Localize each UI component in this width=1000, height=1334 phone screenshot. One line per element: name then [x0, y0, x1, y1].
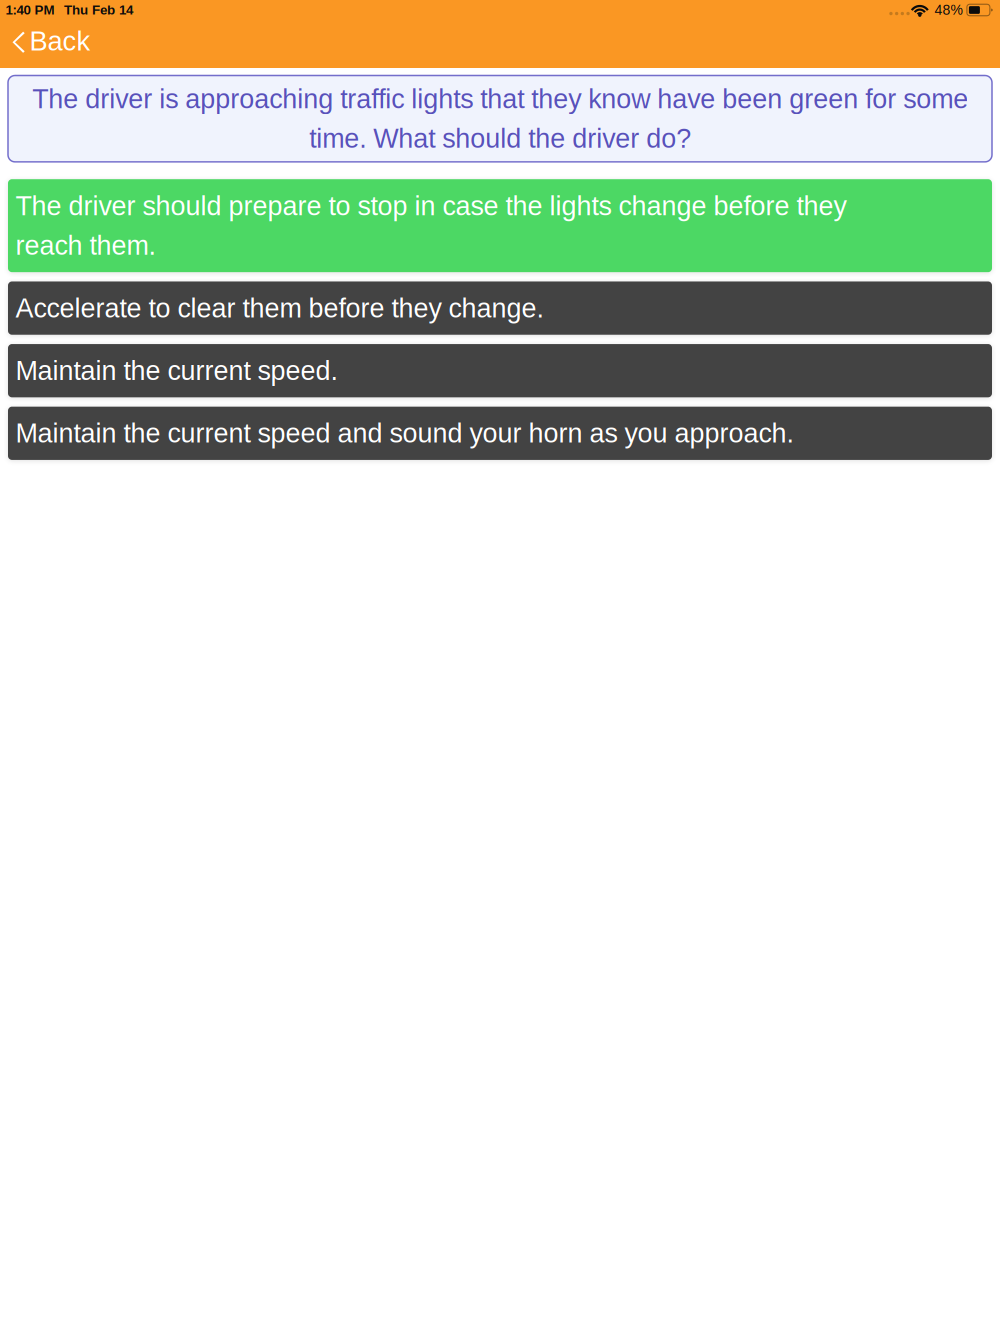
staticText: Maintain the current speed and sound you… — [15, 418, 793, 448]
staticText: Accelerate to clear them before they cha… — [15, 293, 543, 323]
button[interactable]: Maintain the current speed and sound you… — [8, 407, 992, 460]
staticText: Back — [29, 26, 90, 56]
staticText: The driver is approaching traffic lights… — [32, 84, 968, 154]
staticText: 48% — [934, 2, 962, 18]
staticText: Thu Feb 14 — [64, 3, 133, 17]
button[interactable]: Maintain the current speed. — [8, 344, 992, 397]
staticText: Maintain the current speed. — [15, 356, 337, 386]
staticText: The driver should prepare to stop in cas… — [15, 191, 846, 261]
button[interactable]: Back — [0, 20, 106, 68]
button[interactable]: The driver should prepare to stop in cas… — [8, 179, 992, 272]
staticText: 1:40 PM — [5, 3, 54, 17]
button[interactable]: Accelerate to clear them before they cha… — [8, 281, 992, 335]
